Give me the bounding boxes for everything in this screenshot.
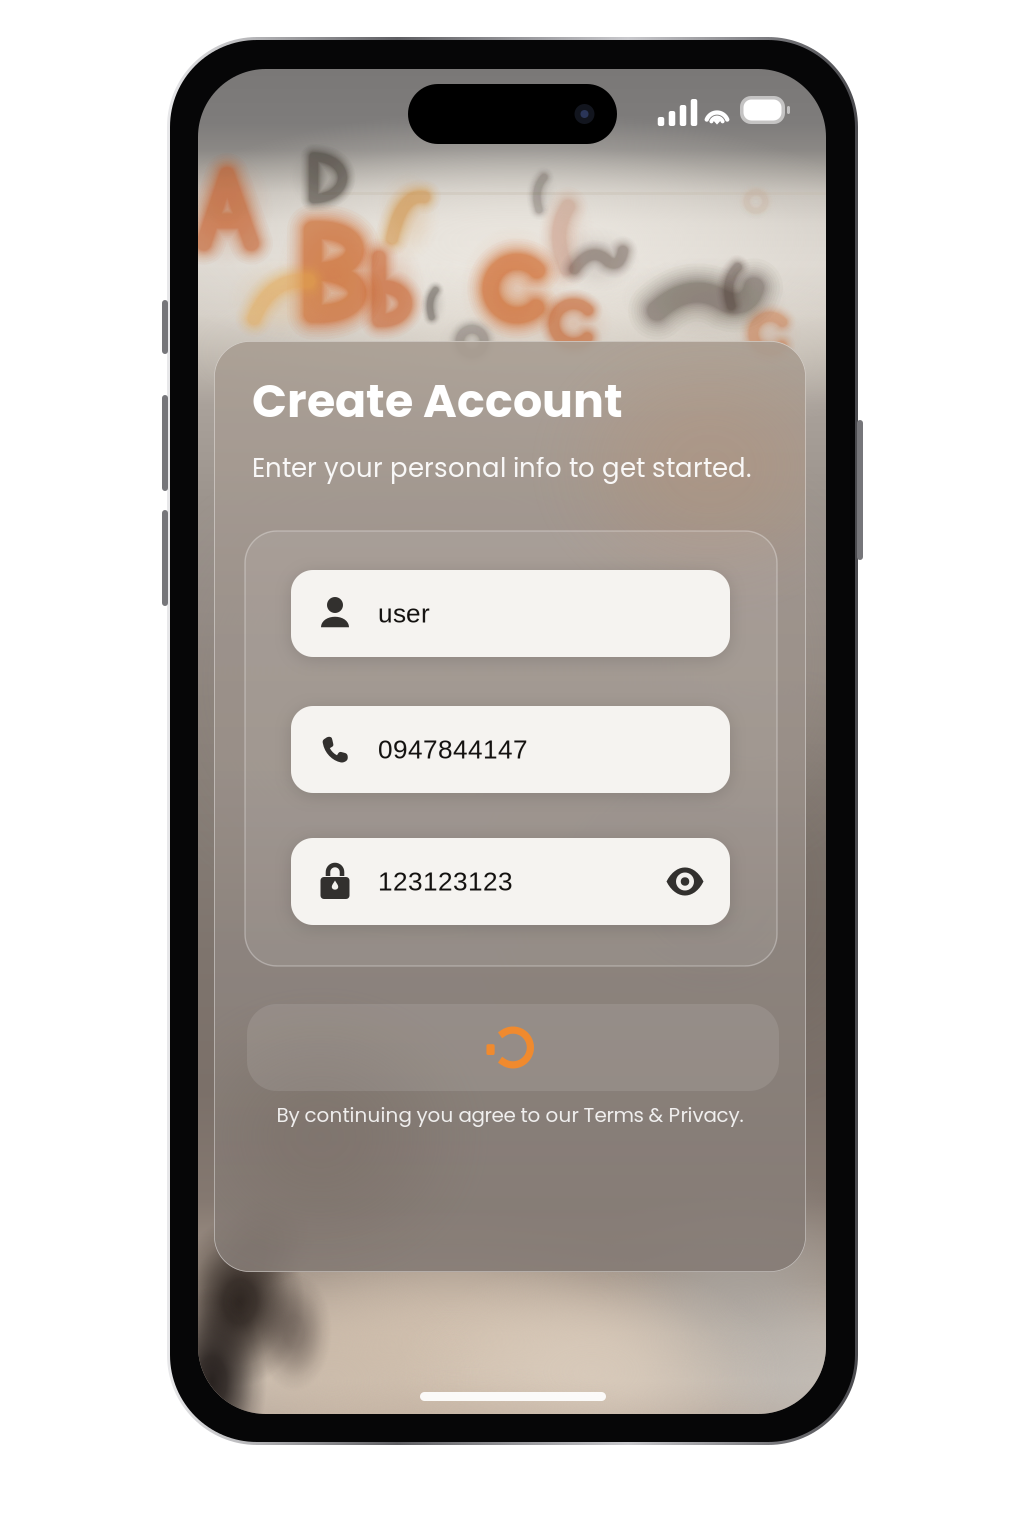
- staticText: Enter your personal info to get started.: [252, 450, 751, 486]
- button[interactable]: Create account: [247, 1004, 779, 1091]
- button[interactable]: By continuing you agree to our Terms & P…: [250, 1098, 770, 1132]
- staticText: 123123123: [378, 867, 513, 896]
- staticText: user: [378, 599, 430, 628]
- button[interactable]: 0947844147: [291, 706, 730, 793]
- staticText: By continuing you agree to our Terms & P…: [276, 1101, 743, 1129]
- button[interactable]: user: [291, 570, 730, 657]
- button[interactable]: 123123123: [291, 838, 730, 925]
- staticText: 0947844147: [378, 735, 528, 764]
- staticText: Create Account: [252, 369, 623, 433]
